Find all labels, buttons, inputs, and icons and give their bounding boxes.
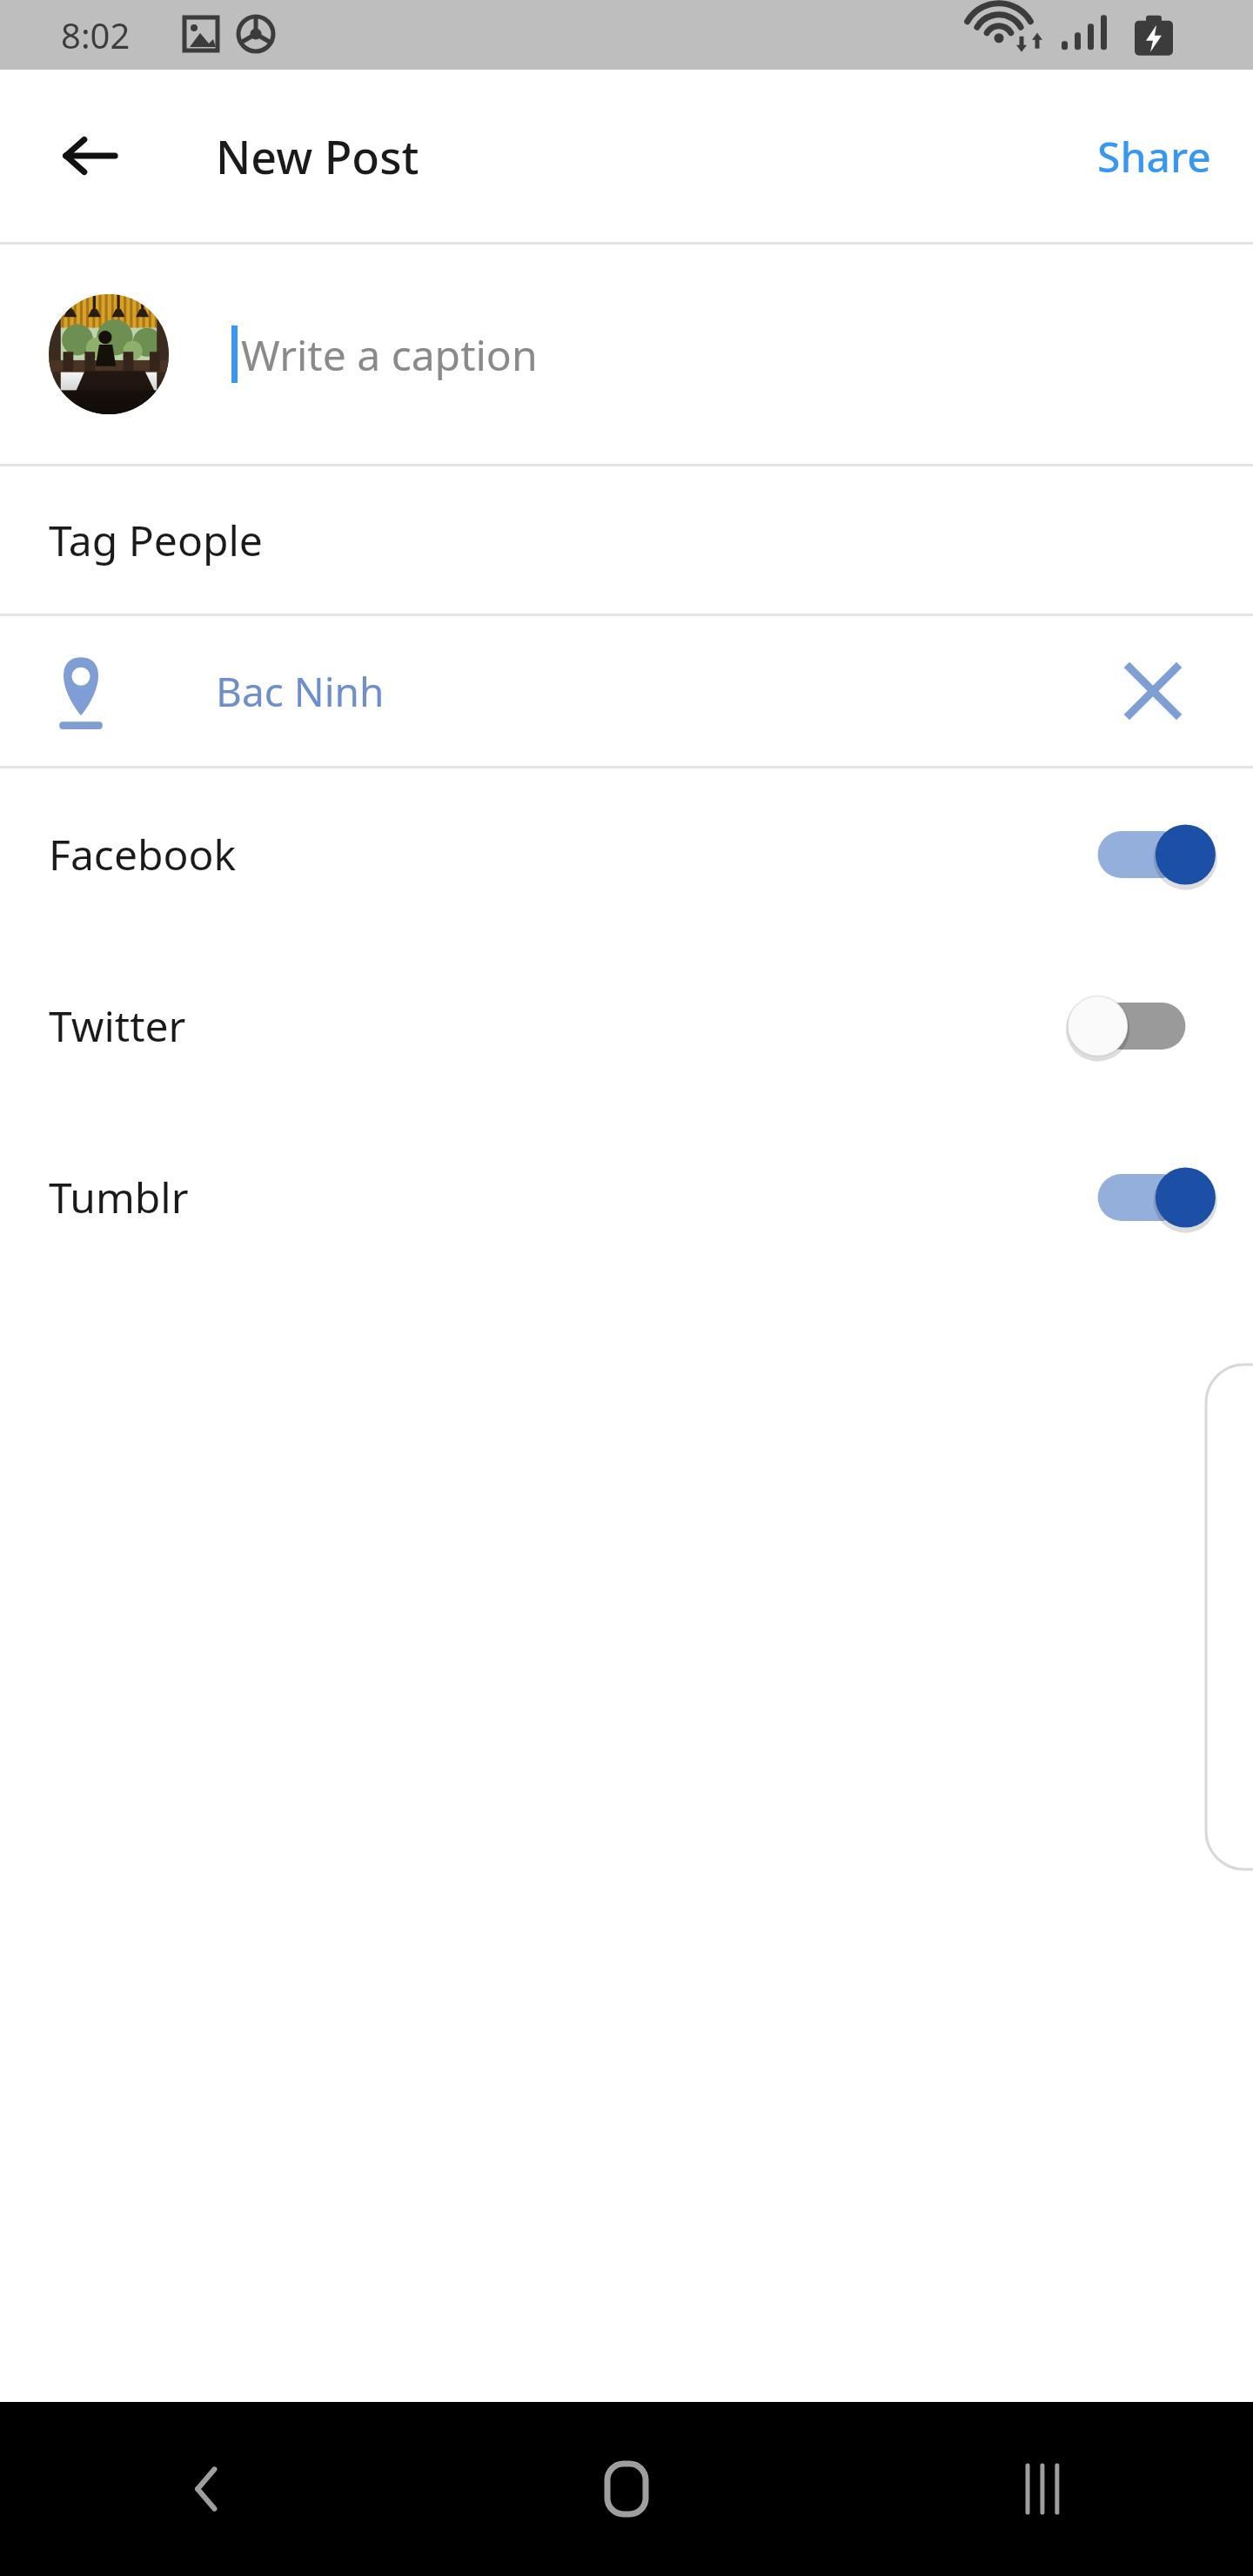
button[interactable]: Facebook <box>0 768 1253 940</box>
button[interactable]: Write a caption <box>0 245 1253 464</box>
button[interactable]: Remove location <box>1105 643 1201 739</box>
staticText: Tumblr <box>49 1169 189 1225</box>
button[interactable]: Back <box>42 108 137 204</box>
button[interactable]: Back <box>0 2402 418 2576</box>
staticText: Facebook <box>49 826 237 882</box>
staticText: Bac Ninh <box>216 664 385 719</box>
staticText: Twitter <box>49 997 186 1054</box>
button[interactable]: Twitter <box>0 940 1253 1111</box>
button[interactable]: Bac Ninh <box>0 616 1253 766</box>
staticText: 8:02 <box>61 11 131 58</box>
button[interactable]: Recent apps <box>835 2402 1253 2576</box>
staticText: New Post <box>216 125 419 187</box>
button[interactable]: Share <box>1073 109 1236 204</box>
button[interactable]: Home <box>418 2402 835 2576</box>
button[interactable]: Tumblr <box>0 1111 1253 1283</box>
staticText: Share <box>1097 128 1211 184</box>
button[interactable] <box>1081 984 1203 1068</box>
button[interactable] <box>1081 813 1203 896</box>
staticText: Write a caption <box>241 326 538 383</box>
button[interactable]: Tag People <box>0 466 1253 614</box>
staticText: Tag People <box>49 512 263 568</box>
button[interactable] <box>1081 1156 1203 1239</box>
